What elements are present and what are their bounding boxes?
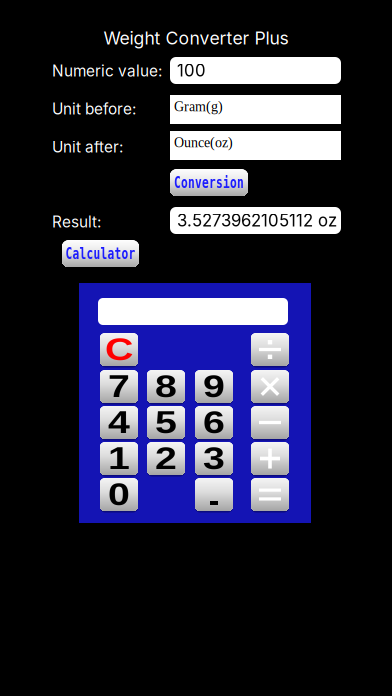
staticText: Unit before: <box>52 100 136 118</box>
button[interactable]: Minus <box>251 405 289 440</box>
staticText: 0 <box>110 477 127 512</box>
staticText: 3.5273962105112 oz <box>177 210 337 231</box>
staticText: 2 <box>157 441 174 476</box>
button[interactable]: 7 <box>100 369 138 404</box>
button[interactable]: Divide <box>251 332 289 367</box>
button[interactable]: C <box>100 332 138 367</box>
button[interactable]: Plus <box>251 441 289 476</box>
button[interactable]: 4 <box>100 405 138 440</box>
button[interactable]: 9 <box>195 369 233 404</box>
staticText: 7 <box>110 369 127 404</box>
staticText: Numeric value: <box>52 62 162 80</box>
staticText: 9 <box>205 369 222 404</box>
staticText: 1 <box>110 441 127 476</box>
button[interactable]: Decimal point <box>195 477 233 512</box>
button[interactable]: 6 <box>195 405 233 440</box>
staticText: 3 <box>205 441 222 476</box>
button[interactable]: 5 <box>147 405 185 440</box>
staticText: Unit after: <box>52 138 123 156</box>
staticText: Result: <box>52 213 101 231</box>
staticText: 100 <box>177 60 206 81</box>
staticText: Ounce(oz) <box>174 135 233 150</box>
staticText: Calculator <box>50 244 150 263</box>
button[interactable]: 8 <box>147 369 185 404</box>
staticText: 6 <box>205 405 222 440</box>
button[interactable]: 2 <box>147 441 185 476</box>
button[interactable]: Conversion <box>170 169 248 196</box>
button[interactable]: 1 <box>100 441 138 476</box>
staticText: C <box>108 332 130 367</box>
staticText: Weight Converter Plus <box>103 27 288 49</box>
button[interactable]: Equals <box>251 477 289 512</box>
button[interactable]: Calculator <box>62 240 139 267</box>
button[interactable]: 0 <box>100 477 138 512</box>
staticText: Gram(g) <box>174 99 223 114</box>
staticText: Conversion <box>159 173 259 192</box>
button[interactable]: Multiply <box>251 369 289 404</box>
staticText: 8 <box>157 369 174 404</box>
staticText: 5 <box>157 405 174 440</box>
staticText: 4 <box>110 405 127 440</box>
button[interactable]: 3 <box>195 441 233 476</box>
